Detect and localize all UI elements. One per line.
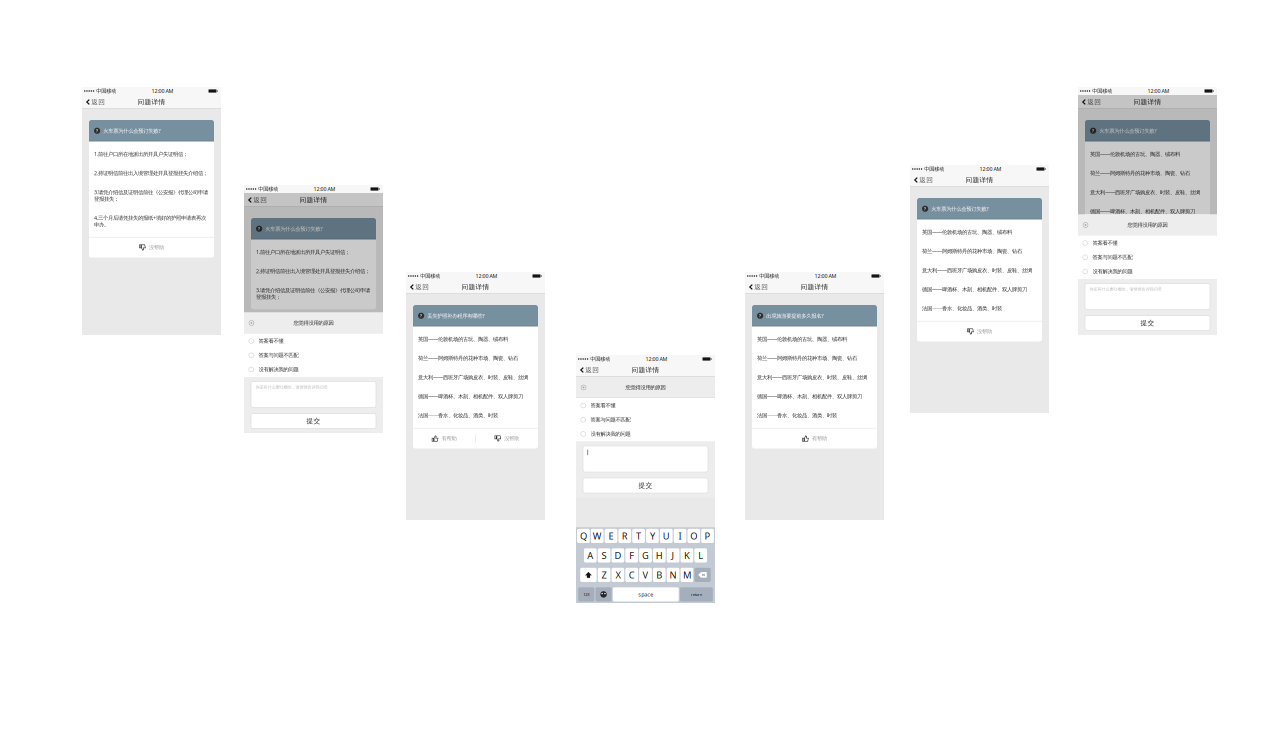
staticText: 12:00 AM [645, 355, 667, 363]
staticText: 没有解决我的问题 [591, 431, 631, 437]
button[interactable]: 没帮助 [917, 321, 1042, 341]
staticText: 荷兰——阿姆斯特丹的花种市场、陶瓷、钻石 [757, 355, 857, 362]
staticText: 返回 [585, 366, 599, 374]
staticText: 提交 [306, 417, 320, 425]
staticText: 返回 [919, 176, 933, 184]
button[interactable]: 答案与问题不匹配 [244, 348, 383, 362]
button[interactable]: 有帮助 [752, 428, 877, 448]
button[interactable]: 提交 [251, 413, 376, 428]
staticText: 中国移动 [757, 273, 779, 279]
button[interactable]: U [660, 529, 672, 543]
staticText: 问题详情 [299, 196, 327, 204]
staticText: 英国——伦敦机场的古玩、陶器、绒布料 [922, 228, 1012, 236]
button[interactable]: 没有解决我的问题 [576, 427, 715, 441]
button[interactable]: 返回 [244, 193, 271, 207]
staticText: 英国——伦敦机场的古玩、陶器、绒布料 [418, 335, 508, 343]
button[interactable]: Close [576, 377, 591, 398]
button[interactable]: I [674, 529, 686, 543]
staticText: 意大利——西班牙广场购皮衣、时装、皮鞋、丝绸 [1090, 189, 1200, 196]
button[interactable]: F [625, 548, 638, 562]
staticText: C [629, 569, 635, 581]
staticText: N [670, 569, 677, 581]
staticText: 法国——香水、化妆品、酒类、时装 [757, 412, 837, 419]
staticText: 法国——香水、化妆品、酒类、时装 [418, 412, 498, 419]
button[interactable]: 返回 [82, 95, 109, 109]
button[interactable]: 123 [578, 587, 594, 601]
staticText: 荷兰——阿姆斯特丹的花种市场、陶瓷、钻石 [418, 355, 518, 362]
button[interactable]: Q [577, 529, 590, 543]
button[interactable]: H [653, 548, 666, 562]
staticText: 4.三个月后请凭挂失的报纸+填好的护照申请表再次申办。 [94, 214, 206, 228]
staticText: R [622, 530, 628, 542]
button[interactable]: E [605, 529, 617, 543]
button[interactable]: 有帮助 [413, 428, 475, 448]
button[interactable]: Z [598, 568, 610, 582]
button[interactable]: Emoji [595, 587, 612, 601]
staticText: 中国移动 [588, 356, 610, 362]
staticText: D [614, 549, 621, 562]
button[interactable]: W [591, 529, 603, 543]
button[interactable]: 答案看不懂 [576, 398, 715, 413]
button[interactable]: P [701, 529, 714, 543]
staticText: 您觉得没用的原因 [1127, 222, 1167, 228]
button[interactable]: 没帮助 [476, 428, 538, 448]
button[interactable]: 返回 [406, 280, 433, 294]
button[interactable]: 没有解决我的问题 [1078, 264, 1217, 278]
button[interactable]: J [667, 548, 679, 562]
button[interactable]: G [639, 548, 652, 562]
staticText: A [587, 549, 593, 562]
staticText: 答案与问题不匹配 [1093, 254, 1133, 261]
staticText: X [615, 569, 620, 581]
staticText: ? [924, 206, 926, 211]
staticText: 3.请凭介绍信及证明信前往《公安报》代理公司申请登报挂失； [256, 287, 370, 300]
button[interactable]: D [611, 548, 624, 562]
staticText: 中国移动 [418, 273, 440, 279]
button[interactable]: C [625, 568, 638, 582]
button[interactable]: O [687, 529, 700, 543]
button[interactable]: A [584, 548, 597, 562]
button[interactable]: Close [1078, 214, 1093, 235]
staticText: Z [602, 569, 607, 581]
staticText: G [642, 549, 649, 562]
button[interactable]: 提交 [1085, 315, 1210, 330]
button[interactable]: M [680, 568, 693, 582]
staticText: return [691, 592, 702, 597]
button[interactable]: N [667, 568, 679, 582]
button[interactable]: V [639, 568, 652, 582]
button[interactable]: B [653, 568, 666, 582]
staticText: 12:00 AM [475, 272, 497, 280]
staticText: 问题详情 [1133, 98, 1161, 106]
button[interactable]: 返回 [576, 363, 603, 377]
button[interactable]: Delete [694, 568, 711, 582]
button[interactable]: 没有解决我的问题 [244, 362, 383, 376]
button[interactable]: S [598, 548, 610, 562]
staticText: 返回 [1087, 98, 1101, 106]
button[interactable]: 答案看不懂 [1078, 236, 1217, 250]
button[interactable]: R [618, 529, 631, 543]
staticText: space [638, 591, 653, 598]
button[interactable]: 提交 [583, 478, 708, 493]
staticText: 答案与问题不匹配 [591, 416, 631, 423]
button[interactable]: Y [646, 529, 659, 543]
button[interactable]: 返回 [1078, 95, 1105, 109]
button[interactable]: K [680, 548, 693, 562]
staticText: F [629, 549, 634, 562]
button[interactable]: L [694, 548, 707, 562]
button[interactable]: return [680, 587, 713, 601]
button[interactable]: 答案与问题不匹配 [576, 413, 715, 427]
staticText: 意大利——西班牙广场购皮衣、时装、皮鞋、丝绸 [418, 374, 528, 381]
staticText: 英国——伦敦机场的古玩、陶器、绒布料 [757, 335, 847, 343]
button[interactable]: 没帮助 [89, 237, 214, 257]
button[interactable]: space [613, 587, 679, 601]
button[interactable]: T [632, 529, 645, 543]
button[interactable]: 答案与问题不匹配 [1078, 250, 1217, 264]
button[interactable]: 返回 [745, 280, 772, 294]
button[interactable]: X [611, 568, 624, 582]
button[interactable]: 答案看不懂 [244, 334, 383, 348]
staticText: 1.前往户口所在地派出所开具户失证明信； [256, 248, 350, 256]
staticText: 问题详情 [800, 283, 828, 291]
button[interactable]: Shift [580, 568, 597, 582]
button[interactable]: Close [244, 312, 259, 333]
staticText: 12:00 AM [313, 185, 335, 193]
button[interactable]: 返回 [910, 173, 937, 187]
